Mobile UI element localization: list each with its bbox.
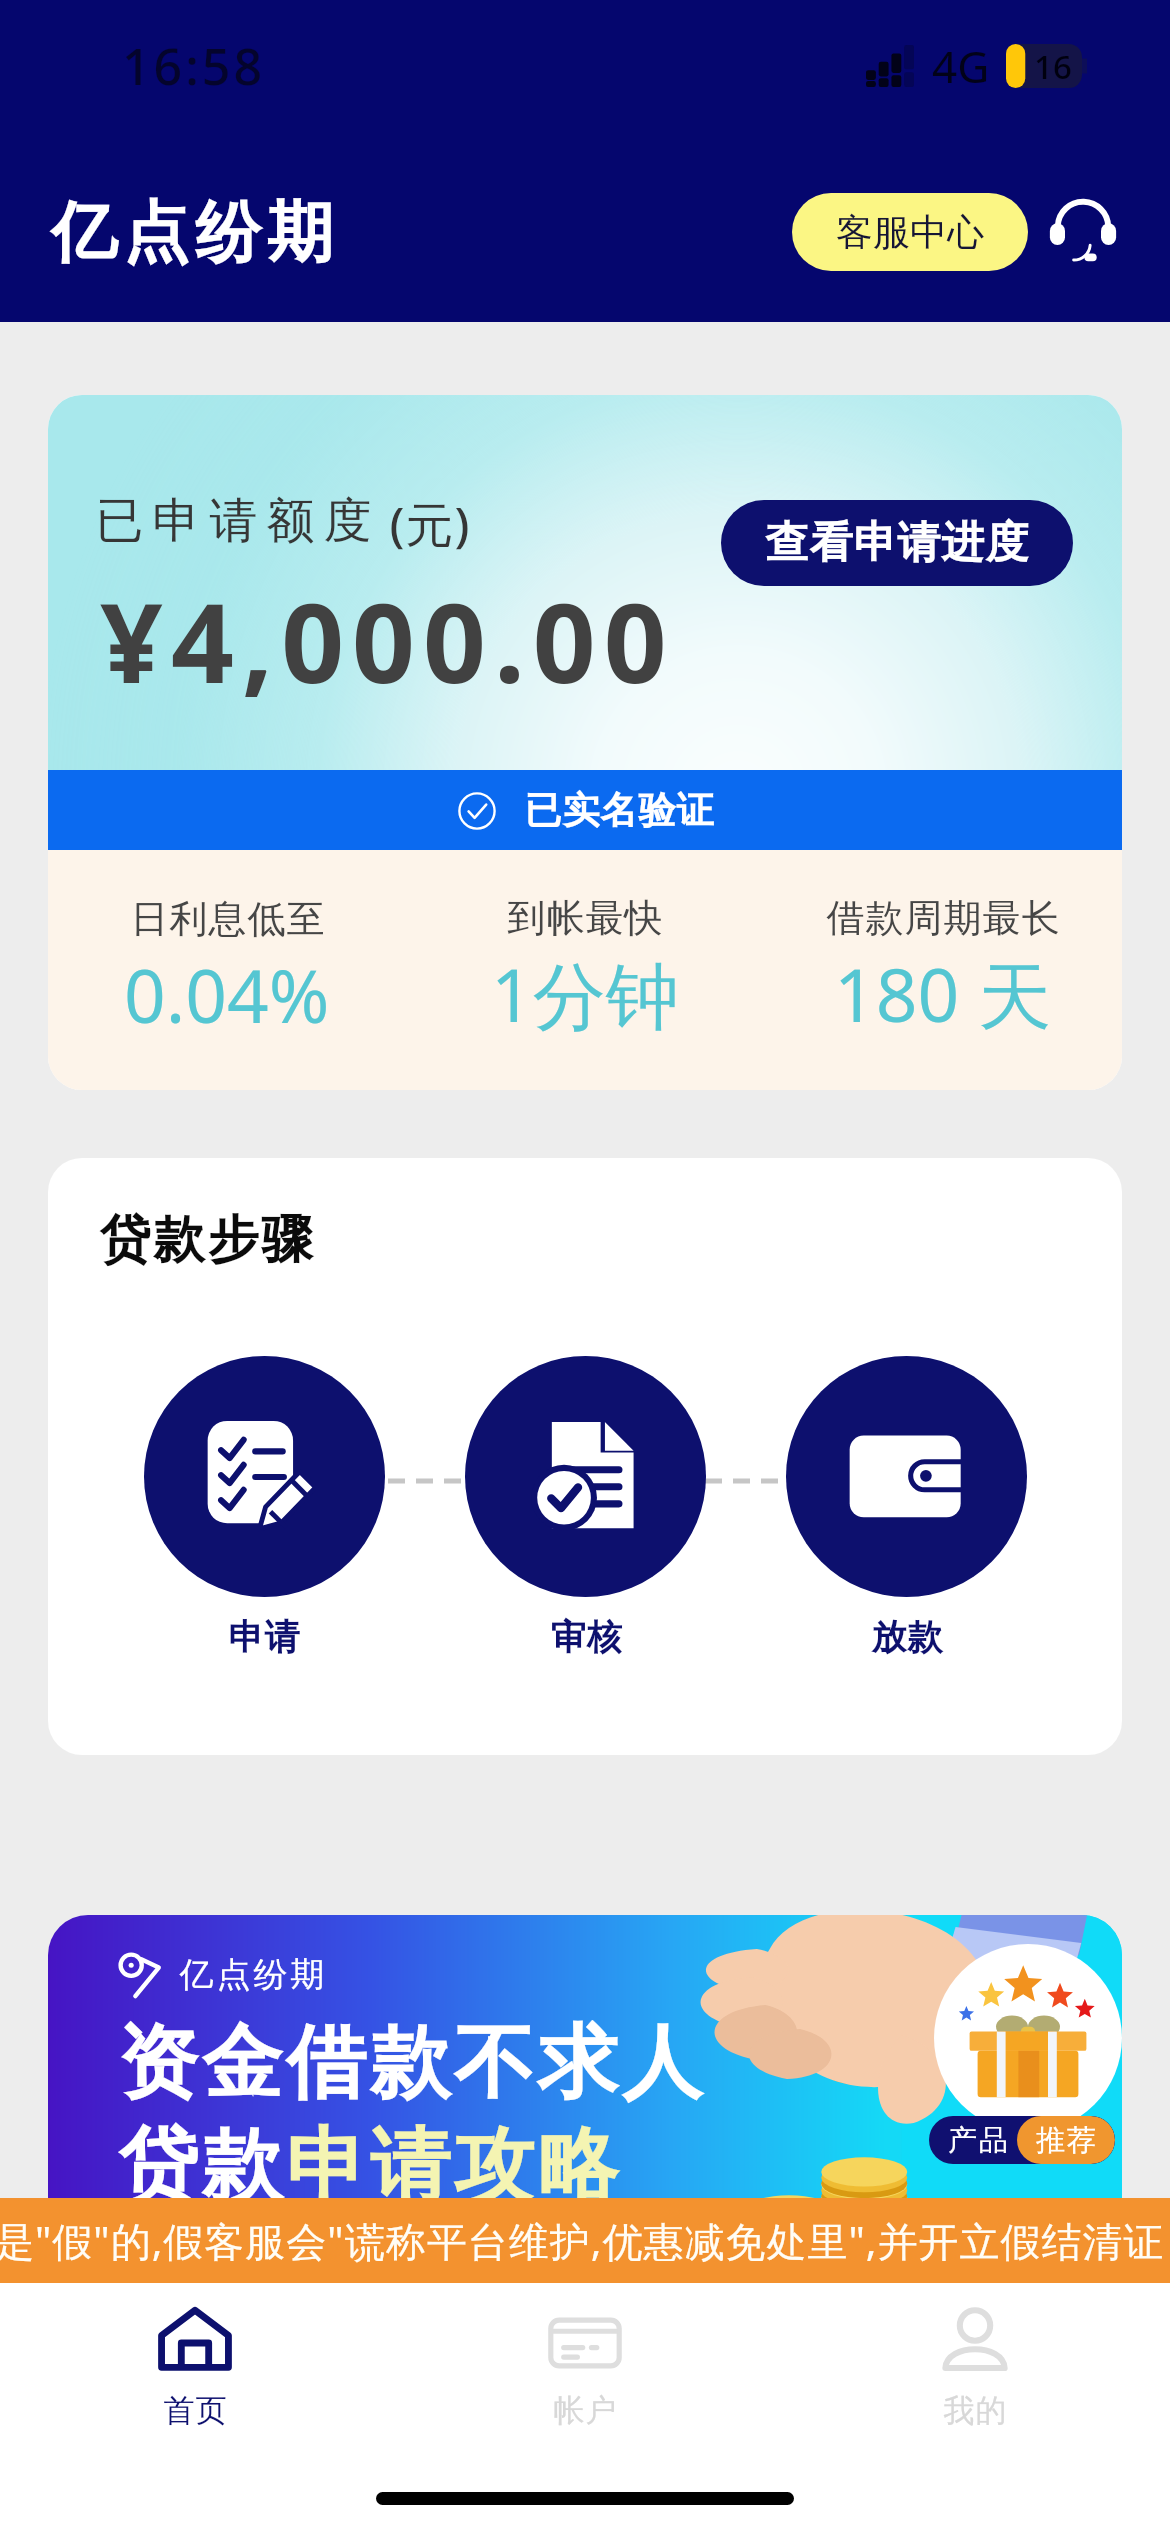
staticText: 放款 bbox=[871, 1615, 943, 1659]
staticText: 首页 bbox=[163, 2391, 227, 2430]
staticText: 我的 bbox=[943, 2391, 1007, 2430]
staticText: 已申请额度 bbox=[91, 491, 376, 551]
button[interactable]: 我的 bbox=[780, 2305, 1170, 2430]
staticText: 已实名验证 bbox=[524, 787, 714, 834]
staticText: 16:58 bbox=[122, 32, 265, 100]
staticText: 推荐 bbox=[1035, 2122, 1097, 2159]
staticText: 审核 bbox=[550, 1615, 622, 1659]
staticText: 借款周期最长 bbox=[826, 894, 1060, 942]
button[interactable]: 查看申请进度 bbox=[721, 500, 1073, 586]
staticText: 到帐最快 bbox=[507, 894, 663, 942]
button[interactable]: Customer service bbox=[1046, 195, 1120, 269]
staticText: 申请 bbox=[228, 1615, 300, 1659]
staticText: 亿点纷期 bbox=[48, 191, 336, 274]
button[interactable]: 已申请额度 bbox=[48, 395, 1122, 1090]
button[interactable]: 是"假"的,假客服会"谎称平台维护,优惠减免处里",并开立假结清证明 bbox=[0, 2198, 1170, 2283]
button[interactable]: 申请 bbox=[103, 1356, 425, 1659]
button[interactable]: 帐户 bbox=[390, 2305, 780, 2430]
staticText: (元) bbox=[376, 491, 471, 557]
staticText: 查看申请进度 bbox=[765, 516, 1029, 570]
staticText: 180 天 bbox=[834, 944, 1052, 1044]
staticText: 客服中心 bbox=[836, 209, 984, 256]
button[interactable]: 放款 bbox=[746, 1356, 1067, 1659]
staticText: 1分钟 bbox=[491, 944, 679, 1044]
staticText: ¥4,000.00 bbox=[100, 565, 675, 715]
staticText: 4G bbox=[932, 36, 990, 96]
staticText: 日利息低至 bbox=[130, 895, 325, 943]
staticText: 亿点纷期 bbox=[178, 1953, 326, 1996]
staticText: 资金借款不求人 bbox=[116, 2013, 704, 2114]
button[interactable]: 审核 bbox=[425, 1356, 746, 1659]
button[interactable]: 客服中心 bbox=[792, 193, 1028, 271]
staticText: 贷款 bbox=[116, 2116, 284, 2217]
staticText: 申请攻略 bbox=[284, 2116, 620, 2217]
staticText: 帐户 bbox=[553, 2391, 617, 2430]
staticText: 产品 bbox=[947, 2122, 1009, 2159]
staticText: 0.04% bbox=[124, 945, 330, 1044]
staticText: 16 bbox=[1034, 44, 1072, 88]
button[interactable]: 亿点纷期 bbox=[48, 1915, 1122, 2315]
button[interactable]: 首页 bbox=[0, 2305, 390, 2430]
staticText: 贷款步骤 bbox=[98, 1208, 314, 1272]
staticText: 是"假"的,假客服会"谎称平台维护,优惠减免处里",并开立假结清证明 bbox=[0, 2213, 1164, 2268]
